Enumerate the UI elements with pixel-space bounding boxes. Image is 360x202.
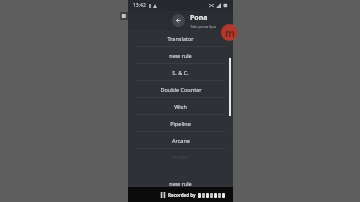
staticText: Wish: [174, 103, 187, 110]
staticText: Arcane: [172, 137, 190, 144]
button[interactable]: Double Counter: [128, 81, 233, 97]
staticText: S. & C.: [172, 69, 189, 76]
staticText: 13:42: [133, 2, 146, 9]
staticText: Pipeline: [170, 120, 191, 127]
staticText: new rule: [169, 52, 192, 59]
button[interactable]: Wish: [128, 98, 233, 114]
button[interactable]: new rule: [128, 179, 233, 187]
staticText: hidden: [172, 154, 189, 161]
button[interactable]: Translator: [128, 30, 233, 46]
button[interactable]: Pause recording: [158, 190, 168, 200]
staticText: Toki pona lipu: [190, 24, 217, 29]
staticText: Translator: [167, 35, 194, 42]
staticText: Double Counter: [160, 86, 202, 93]
button[interactable]: Arcane: [128, 132, 233, 148]
staticText: m: [225, 26, 235, 40]
button[interactable]: Profile: [221, 24, 238, 41]
button[interactable]: Pipeline: [128, 115, 233, 131]
button[interactable]: new rule: [128, 47, 233, 63]
staticText: Recorded by: [168, 192, 196, 198]
staticText: Pona: [190, 13, 208, 23]
button[interactable]: S. & C.: [128, 64, 233, 80]
button[interactable]: Back: [172, 14, 185, 27]
staticText: new rule: [169, 180, 192, 187]
